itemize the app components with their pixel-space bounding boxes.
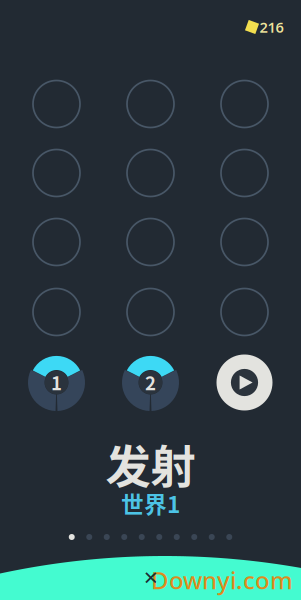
staticText: 216 [259, 17, 283, 37]
button[interactable]: Locked level [221, 218, 268, 265]
button[interactable]: Locked level [127, 149, 174, 196]
staticText: 世界1 [121, 487, 180, 519]
button[interactable]: Locked level [127, 80, 174, 127]
staticText: 1 [51, 368, 62, 395]
staticText: 发射 [105, 431, 195, 497]
button[interactable]: Locked level [221, 149, 268, 196]
staticText: Downyi.com [151, 564, 293, 596]
button[interactable]: Locked level [221, 288, 268, 335]
button[interactable]: 1 [26, 352, 86, 412]
button[interactable]: Locked level [33, 218, 80, 265]
staticText: ✕ [143, 567, 159, 589]
button[interactable]: Locked level [127, 288, 174, 335]
button[interactable]: Locked level [33, 149, 80, 196]
button[interactable]: Locked level [127, 218, 174, 265]
button[interactable]: Locked level [33, 288, 80, 335]
button[interactable]: 2 [120, 352, 180, 412]
button[interactable]: Play [214, 352, 274, 412]
button[interactable]: Locked level [221, 80, 268, 127]
button[interactable]: 216 [246, 17, 283, 37]
staticText: 2 [145, 368, 156, 395]
button[interactable]: Locked level [33, 80, 80, 127]
